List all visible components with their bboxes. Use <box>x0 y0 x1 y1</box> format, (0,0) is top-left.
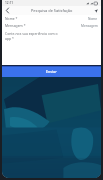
staticText: Mensagem * <box>5 23 81 28</box>
staticText: Enviar <box>46 69 57 74</box>
staticText: Nome <box>88 17 98 21</box>
button[interactable]: Mensagem * <box>2 22 101 29</box>
staticText: 12:11 <box>5 1 14 5</box>
staticText: app * <box>5 36 14 41</box>
staticText: Conte-nos sua experiência com o <box>5 31 58 36</box>
button[interactable]: Back <box>2 6 13 15</box>
staticText: Pesquisa de Satisfação <box>31 8 73 13</box>
button[interactable]: Send <box>90 6 101 15</box>
button[interactable]: Enviar <box>2 66 101 77</box>
button[interactable]: Nome * <box>2 15 101 22</box>
staticText: Mensagem <box>81 24 98 28</box>
staticText: Nome * <box>5 16 88 21</box>
button[interactable]: Conte-nos sua experiência com o <box>2 29 101 41</box>
